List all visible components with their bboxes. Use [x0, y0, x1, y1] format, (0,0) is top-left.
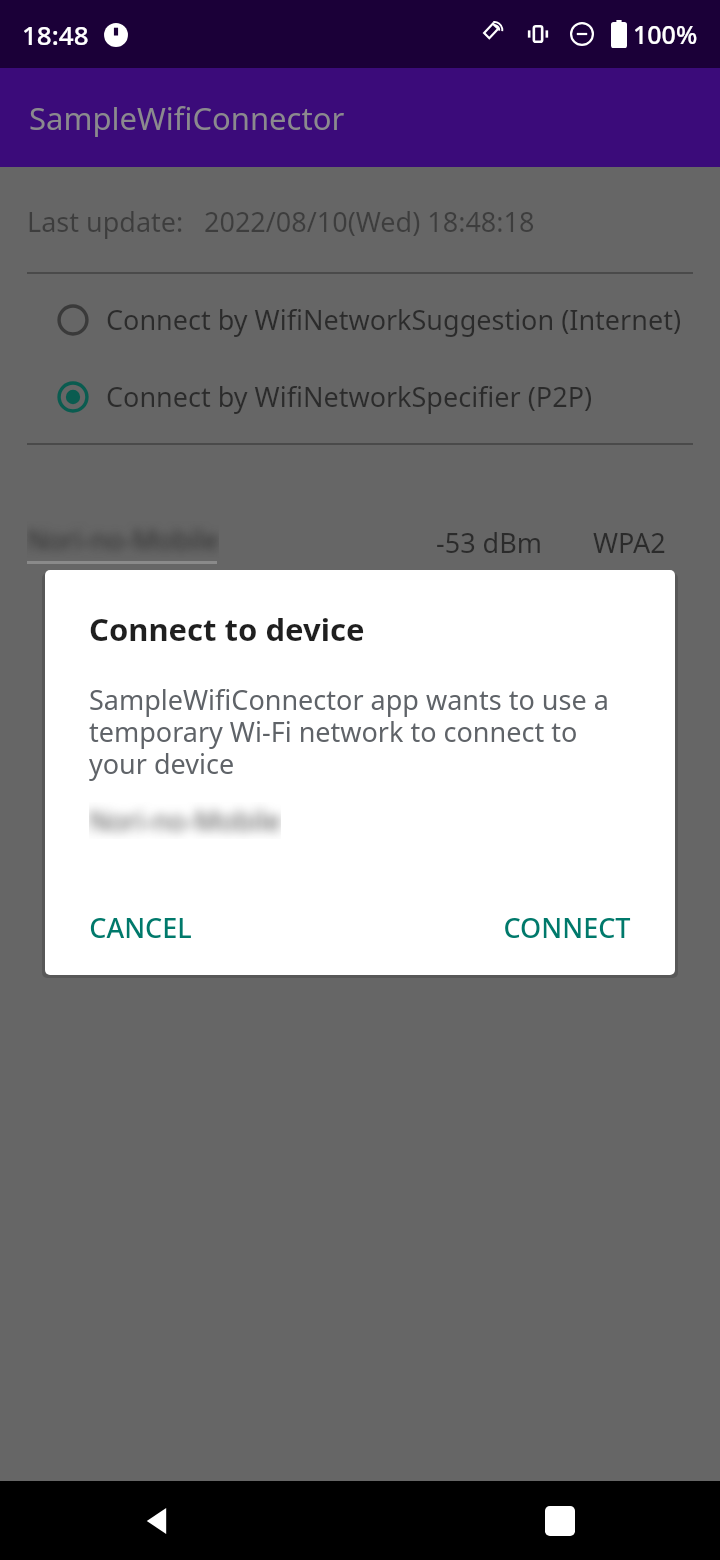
staticText: CONNECT [503, 909, 631, 946]
staticText: -53 dBm [436, 524, 543, 561]
staticText: SampleWifiConnector app wants to use a t… [89, 681, 639, 782]
staticText: Nori-no-Mobile [27, 521, 219, 558]
staticText: Last update: [27, 203, 184, 240]
button[interactable]: Connect by WifiNetworkSuggestion (Intern… [0, 291, 720, 348]
staticText: 100% [633, 17, 698, 51]
staticText: 18:48 [22, 17, 89, 52]
button[interactable]: CONNECT [487, 895, 647, 960]
staticText: Connect by WifiNetworkSuggestion (Intern… [106, 301, 681, 338]
staticText: Connect by WifiNetworkSpecifier (P2P) [106, 378, 593, 415]
button[interactable]: Recent apps [520, 1481, 600, 1560]
staticText: WPA2 [593, 524, 693, 561]
staticText: SampleWifiConnector [29, 97, 345, 139]
staticText: CANCEL [89, 909, 192, 946]
button[interactable]: Connect by WifiNetworkSpecifier (P2P) [0, 368, 720, 425]
staticText: 2022/08/10(Wed) 18:48:18 [204, 203, 535, 240]
button[interactable]: Back [118, 1481, 198, 1560]
staticText: Nori-no-Mobile [89, 802, 281, 839]
button[interactable]: Nori-no-Mobile [27, 521, 693, 564]
button[interactable]: CANCEL [73, 895, 208, 960]
staticText: Connect to device [89, 608, 365, 650]
